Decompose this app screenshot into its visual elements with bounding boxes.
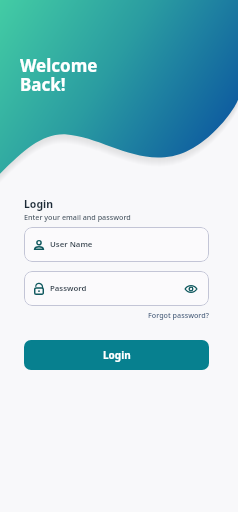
staticText: Enter your email and password — [24, 212, 131, 222]
staticText: Welcome Back! — [20, 54, 98, 96]
button[interactable]: Password — [24, 271, 209, 306]
button[interactable]: Login — [24, 340, 209, 370]
staticText: Password — [50, 283, 87, 294]
staticText: Login — [103, 348, 131, 362]
button[interactable]: Forgot password? — [148, 310, 209, 320]
button[interactable]: User Name — [24, 227, 209, 262]
staticText: Login — [24, 197, 54, 211]
button[interactable]: Show password — [181, 279, 201, 299]
staticText: User Name — [50, 239, 93, 250]
